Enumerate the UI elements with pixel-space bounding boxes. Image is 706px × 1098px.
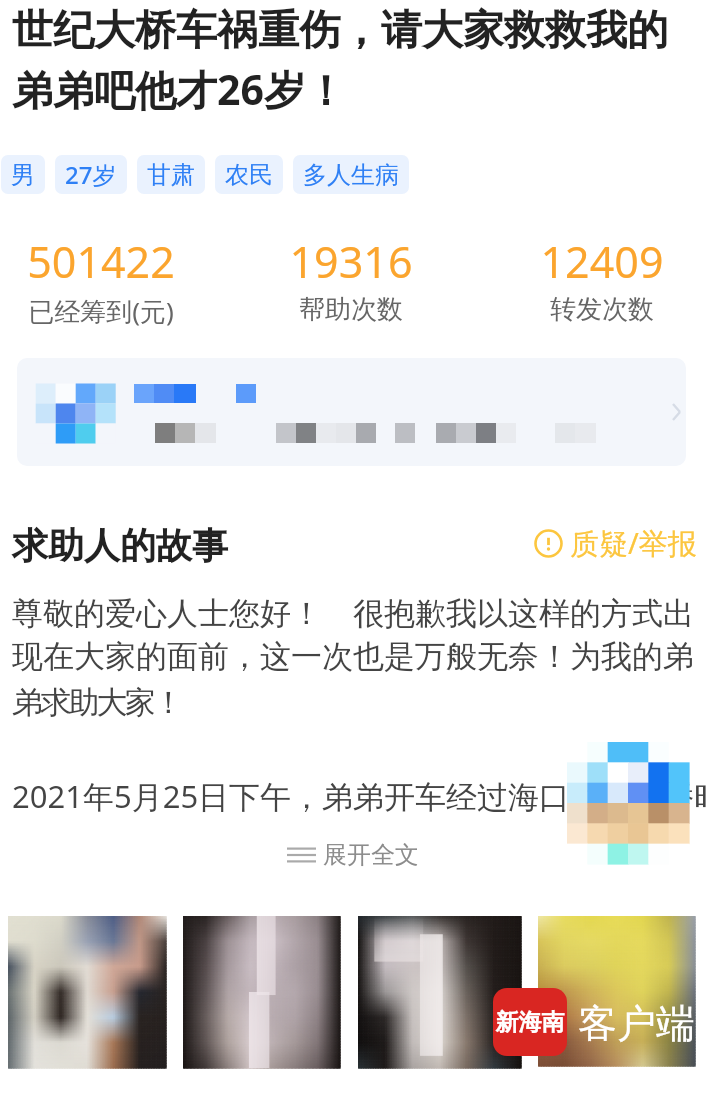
staticText: 甘肃 xyxy=(147,160,195,190)
staticText: 弟求助大家！ xyxy=(12,683,706,722)
staticText: 已经筹到(元) xyxy=(0,293,221,329)
staticText: 质疑/举报 xyxy=(570,523,697,563)
button[interactable]: 27岁 xyxy=(55,155,127,194)
button[interactable]: Photo 2 xyxy=(183,916,340,1068)
staticText: 19316 xyxy=(231,232,471,291)
staticText: 新海南 xyxy=(495,1008,565,1037)
staticText: 501422 xyxy=(0,232,221,291)
staticText: 帮助次数 xyxy=(231,293,471,326)
staticText: 12409 xyxy=(482,232,706,291)
staticText: 展开全文 xyxy=(323,840,419,870)
button[interactable]: 展开全文 xyxy=(287,840,419,870)
button[interactable]: 农民 xyxy=(215,155,283,194)
button[interactable]: Photo 3 xyxy=(358,916,521,1068)
button[interactable]: Photo 1 xyxy=(8,916,166,1068)
staticText: 尊敬的爱心人士您好！ 很抱歉我以这样的方式出 xyxy=(12,591,706,633)
staticText: 求助人的故事 xyxy=(12,523,228,568)
staticText: 现在大家的面前，这一次也是万般无奈！为我的弟 xyxy=(12,637,706,676)
button[interactable]: Photo 4 xyxy=(538,916,695,1066)
button[interactable] xyxy=(17,358,686,466)
staticText: 农民 xyxy=(225,160,273,190)
staticText: 男 xyxy=(11,160,35,190)
staticText: 转发次数 xyxy=(482,293,706,326)
button[interactable]: 质疑/举报 xyxy=(534,523,697,563)
button[interactable]: 男 xyxy=(1,155,45,194)
staticText: 27岁 xyxy=(65,158,117,191)
staticText: 世纪大桥车祸重伤，请大家救救我的弟弟吧他才26岁！ xyxy=(12,5,692,117)
button[interactable]: 多人生病 xyxy=(293,155,409,194)
staticText: 多人生病 xyxy=(303,160,399,190)
staticText: 客户端 xyxy=(578,999,695,1048)
button[interactable]: 甘肃 xyxy=(137,155,205,194)
staticText: 2021年5月25日下午，弟弟开车经过海口世纪大桥时发生车 xyxy=(12,775,706,817)
